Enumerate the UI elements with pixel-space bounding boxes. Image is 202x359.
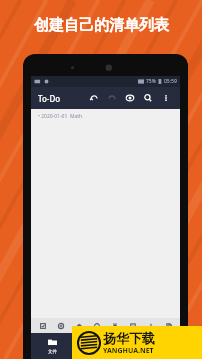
- button[interactable]: Redo: [103, 87, 121, 109]
- staticText: YANGHUA.NET: [103, 346, 154, 356]
- button[interactable]: 文件: [31, 333, 73, 359]
- staticText: 扬华下载: [103, 330, 155, 346]
- button[interactable]: Undo: [85, 87, 103, 109]
- button[interactable]: Copy: [161, 318, 176, 333]
- staticText: To-Do: [38, 93, 61, 104]
- staticText: 75%: [146, 78, 156, 85]
- button[interactable]: • 2020-01-01 Math: [31, 109, 180, 123]
- button[interactable]: More options: [157, 87, 175, 109]
- staticText: 05:59: [164, 78, 177, 85]
- button[interactable]: Search: [139, 87, 157, 109]
- button[interactable]: Star: [89, 318, 104, 333]
- button[interactable]: Delete: [107, 318, 122, 333]
- button[interactable]: Archive: [125, 318, 140, 333]
- staticText: 文件: [48, 349, 57, 355]
- staticText: • 2020-01-01 Math: [38, 113, 83, 120]
- button[interactable]: Checkbox: [35, 318, 50, 333]
- staticText: 创建自己的清单列表: [34, 16, 169, 35]
- button[interactable]: Mention: [53, 318, 68, 333]
- button[interactable]: Attach: [143, 318, 158, 333]
- button[interactable]: Tag: [71, 318, 86, 333]
- button[interactable]: Preview: [121, 87, 139, 109]
